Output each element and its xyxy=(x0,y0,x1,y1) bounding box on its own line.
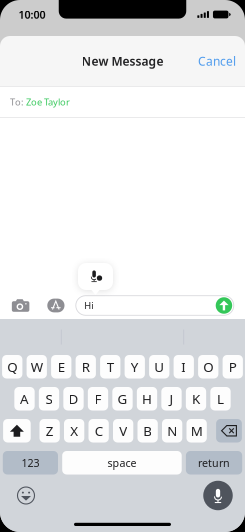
button[interactable]: V xyxy=(113,419,133,442)
staticText: P xyxy=(229,358,237,376)
staticText: 123 xyxy=(21,456,39,470)
staticText: F xyxy=(94,390,101,408)
staticText: R xyxy=(82,358,90,376)
button[interactable]: Delete xyxy=(216,419,242,442)
staticText: O xyxy=(203,358,213,376)
button[interactable]: R xyxy=(76,355,96,378)
button[interactable]: Camera xyxy=(9,293,33,317)
button[interactable]: K xyxy=(186,387,206,410)
staticText: B xyxy=(143,422,152,440)
staticText: space xyxy=(107,456,136,470)
button[interactable]: L xyxy=(210,387,231,410)
button[interactable]: Shift xyxy=(3,419,31,442)
button[interactable]: Cancel xyxy=(191,46,243,76)
button[interactable]: U xyxy=(149,355,169,378)
button[interactable]: A xyxy=(14,387,35,410)
button[interactable]: return xyxy=(186,451,242,474)
staticText: K xyxy=(192,390,200,408)
button[interactable]: X xyxy=(64,419,84,442)
button[interactable]: H xyxy=(137,387,157,410)
button[interactable]: Q xyxy=(2,355,22,378)
staticText: New Message xyxy=(81,53,163,69)
button[interactable]: 123 xyxy=(3,451,58,474)
staticText: return xyxy=(198,456,230,470)
staticText: S xyxy=(45,390,52,408)
staticText: T xyxy=(107,358,114,376)
button[interactable]: D xyxy=(63,387,84,410)
button[interactable]: N xyxy=(162,419,182,442)
button[interactable]: Z xyxy=(39,419,60,442)
staticText: Cancel xyxy=(198,53,236,69)
staticText: L xyxy=(217,390,224,408)
staticText: V xyxy=(119,422,127,440)
button[interactable]: T xyxy=(100,355,120,378)
button[interactable]: O xyxy=(198,355,218,378)
staticText: Q xyxy=(7,358,17,376)
staticText: I xyxy=(181,358,186,376)
button[interactable]: Y xyxy=(125,355,145,378)
button[interactable]: J xyxy=(161,387,182,410)
staticText: H xyxy=(142,390,152,408)
button[interactable]: C xyxy=(88,419,109,442)
staticText: A xyxy=(20,390,29,408)
staticText: G xyxy=(117,390,127,408)
button[interactable]: M xyxy=(186,419,207,442)
staticText: D xyxy=(68,390,78,408)
staticText: Hi xyxy=(84,299,93,312)
button[interactable]: space xyxy=(62,451,182,474)
button[interactable]: G xyxy=(112,387,133,410)
staticText: C xyxy=(95,422,103,440)
button[interactable]: Emoji xyxy=(9,480,43,510)
staticText: To: xyxy=(10,96,26,108)
button[interactable]: E xyxy=(51,355,71,378)
button[interactable]: P xyxy=(223,355,243,378)
staticText: X xyxy=(70,422,78,440)
button[interactable]: Send xyxy=(216,297,232,314)
button[interactable]: F xyxy=(88,387,108,410)
staticText: E xyxy=(58,358,65,376)
staticText: U xyxy=(154,358,164,376)
button[interactable]: I xyxy=(174,355,194,378)
staticText: M xyxy=(191,422,203,440)
button[interactable]: W xyxy=(27,355,47,378)
staticText: J xyxy=(169,390,173,408)
staticText: Zoe Taylor xyxy=(26,96,70,108)
staticText: N xyxy=(167,422,177,440)
staticText: W xyxy=(31,358,43,376)
button[interactable]: B xyxy=(137,419,158,442)
button[interactable]: Dictation xyxy=(201,478,235,512)
staticText: 10:00 xyxy=(18,7,45,22)
button[interactable]: Apps xyxy=(44,294,67,317)
staticText: Z xyxy=(46,422,54,440)
staticText: Y xyxy=(131,358,139,376)
button[interactable]: S xyxy=(39,387,59,410)
